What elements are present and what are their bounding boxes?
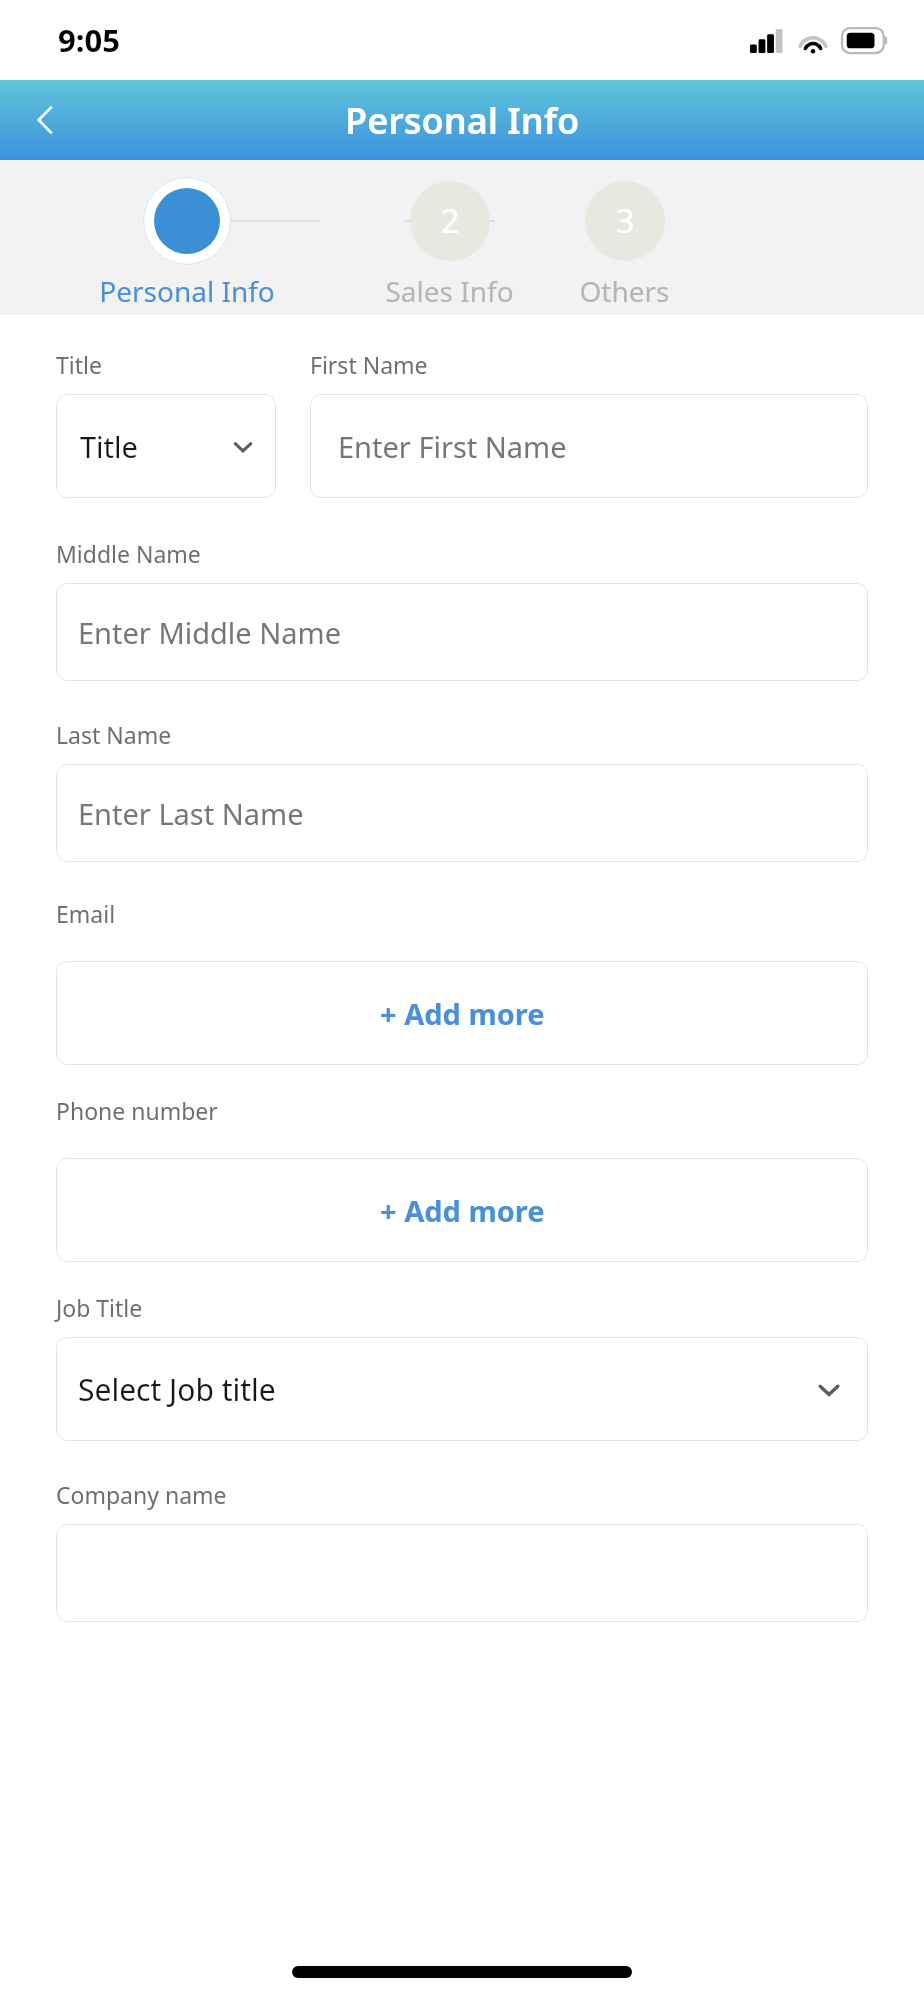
button[interactable]: 3 [537, 174, 712, 310]
staticText: Title [80, 427, 138, 466]
button[interactable]: Title [56, 394, 276, 498]
staticText: Sales Info [385, 272, 514, 310]
staticText: Select Job title [78, 1369, 276, 1410]
staticText: Others [579, 272, 670, 310]
staticText: First Name [310, 349, 428, 380]
button[interactable]: Back [14, 88, 78, 152]
button[interactable]: Enter Middle Name [56, 583, 868, 681]
button[interactable]: 2 [362, 174, 537, 310]
staticText: Middle Name [56, 538, 201, 569]
staticText: Enter First Name [338, 427, 567, 466]
staticText: Title [56, 349, 102, 380]
staticText: Enter Last Name [78, 794, 304, 833]
staticText: Email [56, 898, 116, 929]
staticText: Job Title [56, 1292, 143, 1323]
staticText: Personal Info [345, 96, 580, 145]
staticText: Last Name [56, 719, 172, 750]
button[interactable]: + Add more [56, 1158, 868, 1262]
staticText: Company name [56, 1479, 227, 1510]
staticText: 2 [441, 199, 460, 243]
staticText: Phone number [56, 1095, 218, 1126]
button[interactable]: Enter First Name [310, 394, 868, 498]
staticText: 9:05 [58, 19, 120, 61]
staticText: Personal Info [99, 272, 275, 310]
button[interactable] [56, 1524, 868, 1622]
button[interactable]: Select Job title [56, 1337, 868, 1441]
button[interactable]: Personal Info [12, 174, 362, 310]
button[interactable]: Enter Last Name [56, 764, 868, 862]
staticText: 3 [616, 199, 635, 243]
button[interactable]: + Add more [56, 961, 868, 1065]
staticText: Enter Middle Name [78, 613, 342, 652]
staticText: + Add more [380, 994, 545, 1033]
staticText: + Add more [380, 1191, 545, 1230]
